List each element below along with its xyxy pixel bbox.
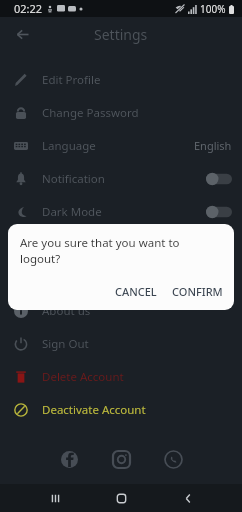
button[interactable]: Back [176,486,200,510]
staticText: CANCEL [115,284,157,299]
staticText: 02:22 [14,1,43,16]
button[interactable]: Deactivate Account [0,393,242,426]
button[interactable]: Home [109,486,133,510]
button[interactable]: Dark Mode [0,195,242,228]
staticText: Delete Account [42,369,124,385]
button[interactable]: Delete Account [0,360,242,393]
staticText: Dark Mode [42,204,102,220]
button[interactable]: Notification [0,162,242,195]
button[interactable]: WhatsApp [158,444,188,474]
staticText: 100% [200,2,226,16]
staticText: Notification [42,171,105,187]
staticText: Settings [94,25,148,44]
staticText: Sign Out [42,336,89,352]
staticText: Deactivate Account [42,402,146,418]
button[interactable]: Language [0,129,242,162]
staticText: Edit Profile [42,72,101,88]
button[interactable]: Back [8,20,36,48]
button[interactable]: About us [0,294,242,327]
staticText: Change Password [42,105,139,121]
button[interactable]: Recents [43,486,67,510]
button[interactable]: Change Password [0,96,242,129]
button[interactable]: Sign Out [0,327,242,360]
staticText: Language [42,138,96,154]
button[interactable]: Facebook [54,444,84,474]
button[interactable]: Edit Profile [0,63,242,96]
staticText: English [194,138,232,153]
button[interactable]: CONFIRM [165,280,230,303]
staticText: CONFIRM [172,284,223,299]
button[interactable]: Instagram [106,444,136,474]
staticText: About us [42,303,91,319]
staticText: Are you sure that you want to logout? [20,235,222,267]
button[interactable]: CANCEL [108,280,164,303]
